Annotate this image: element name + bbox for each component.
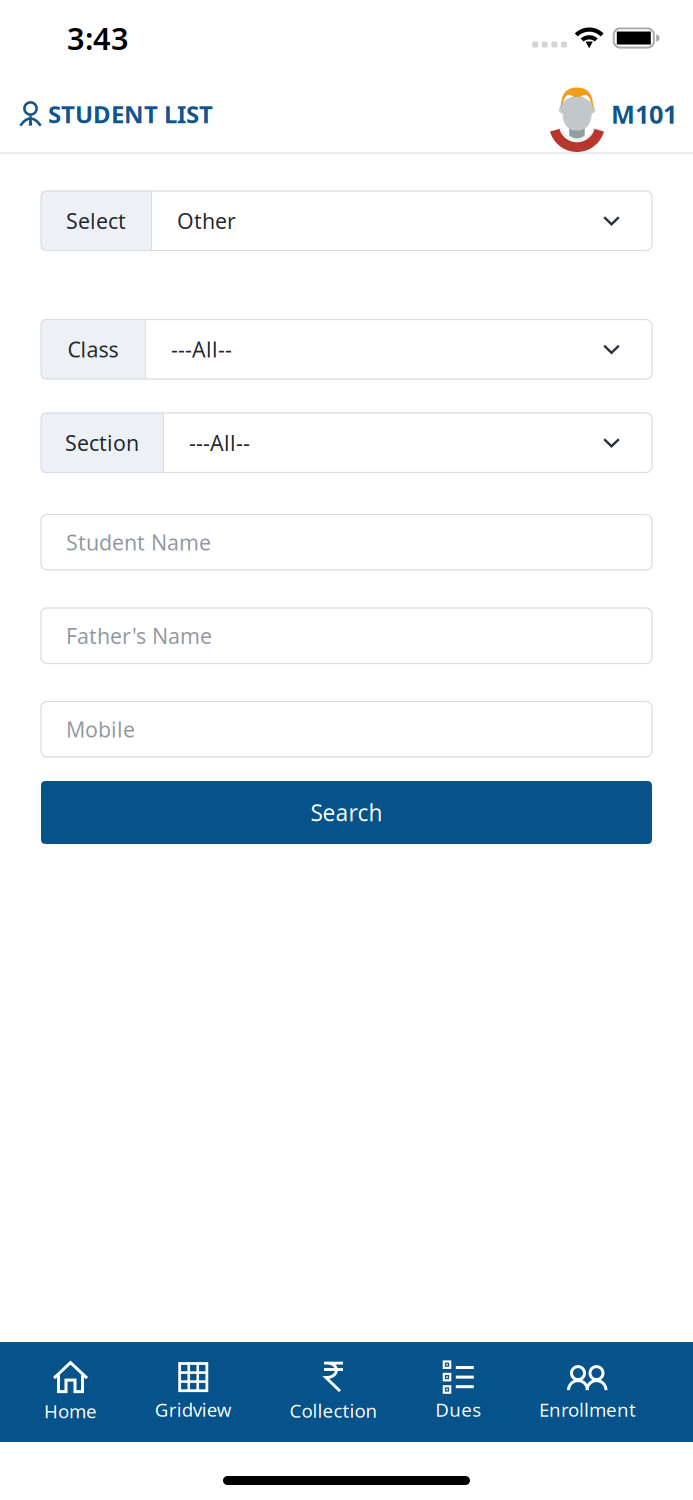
button[interactable]: Home xyxy=(44,1342,97,1442)
button[interactable]: Gridview xyxy=(155,1342,232,1442)
button[interactable]: Enrollment xyxy=(539,1342,636,1442)
button[interactable]: M101 xyxy=(549,72,693,155)
staticText: Home xyxy=(44,1399,97,1423)
button[interactable]: Mobile xyxy=(41,701,652,757)
staticText: Class xyxy=(67,335,118,363)
button[interactable]: Dues xyxy=(435,1342,481,1442)
staticText: Dues xyxy=(435,1397,481,1422)
staticText: Father's Name xyxy=(66,622,212,650)
staticText: 3:43 xyxy=(67,18,129,58)
staticText: Student Name xyxy=(66,528,211,556)
button[interactable]: STUDENT LIST xyxy=(0,98,213,130)
staticText: Section xyxy=(65,429,139,457)
button[interactable]: Select xyxy=(41,191,652,250)
button[interactable]: Search xyxy=(41,781,652,844)
staticText: ---All-- xyxy=(171,335,232,363)
button[interactable]: Father's Name xyxy=(41,608,652,663)
staticText: Search xyxy=(310,797,382,827)
staticText: STUDENT LIST xyxy=(48,98,213,130)
staticText: Enrollment xyxy=(539,1397,636,1422)
button[interactable]: Class xyxy=(41,319,652,379)
button[interactable]: Section xyxy=(41,413,652,472)
staticText: Collection xyxy=(289,1398,377,1423)
button[interactable]: Collection xyxy=(289,1342,377,1442)
staticText: Mobile xyxy=(66,715,135,743)
staticText: M101 xyxy=(611,97,677,131)
staticText: Select xyxy=(66,207,126,235)
staticText: ---All-- xyxy=(189,429,250,457)
button[interactable]: Student Name xyxy=(41,514,652,570)
staticText: Gridview xyxy=(155,1397,232,1422)
staticText: Other xyxy=(177,207,236,235)
